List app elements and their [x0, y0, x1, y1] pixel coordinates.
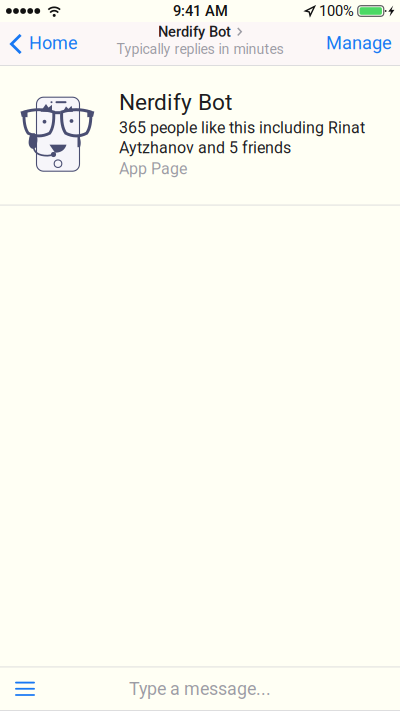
staticText: 365 people like this including Rinat [119, 118, 365, 137]
staticText: Nerdify Bot [119, 89, 232, 115]
button[interactable]: Home [0, 22, 88, 65]
staticText: Home [29, 32, 78, 54]
button[interactable]: More options [0, 667, 51, 710]
button[interactable]: Type a message... [100, 667, 300, 710]
staticText: 9:41 AM [173, 2, 228, 20]
button[interactable]: Nerdify Bot [90, 22, 310, 65]
staticText: App Page [119, 159, 187, 178]
staticText: Typically replies in minutes [116, 41, 283, 57]
staticText: Type a message... [129, 678, 271, 699]
button[interactable]: Manage [316, 22, 400, 65]
staticText: Manage [326, 32, 392, 54]
button[interactable]: Nerdify Bot [0, 66, 400, 205]
staticText: Aytzhanov and 5 friends [119, 138, 291, 157]
staticText: Nerdify Bot [158, 23, 231, 40]
staticText: 100% [319, 2, 354, 20]
